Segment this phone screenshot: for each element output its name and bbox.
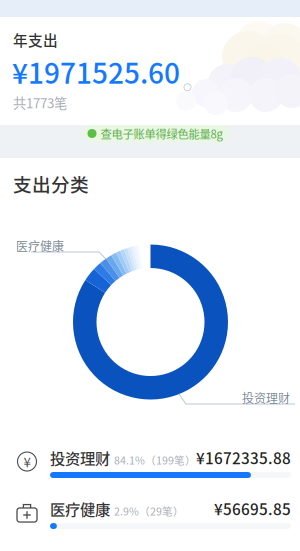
staticText: 年支出 (13, 29, 58, 50)
staticText: ¥ (23, 452, 30, 471)
staticText: 投资理财 (242, 389, 290, 406)
staticText: 共1773笔 (13, 93, 67, 112)
staticText: ¥1672335.88 (196, 446, 291, 469)
staticText: ¥1971525.60 (12, 51, 180, 92)
staticText: 查电子账单得绿色能量8g (100, 125, 222, 142)
staticText: 投资理财 (50, 446, 110, 469)
button[interactable]: 医疗健康 (0, 489, 300, 540)
staticText: 支出分类 (13, 170, 89, 197)
button[interactable]: ¥ (0, 438, 300, 489)
staticText: 84.1% (114, 452, 145, 468)
staticText: 医疗健康 (16, 237, 64, 254)
staticText: （199笔） (145, 452, 196, 468)
staticText: （29笔） (139, 503, 184, 519)
staticText: 医疗健康 (50, 497, 110, 520)
staticText: ¥56695.85 (214, 497, 291, 520)
button[interactable]: 查电子账单得绿色能量8g (82, 125, 229, 142)
staticText: 2.9% (114, 503, 139, 519)
